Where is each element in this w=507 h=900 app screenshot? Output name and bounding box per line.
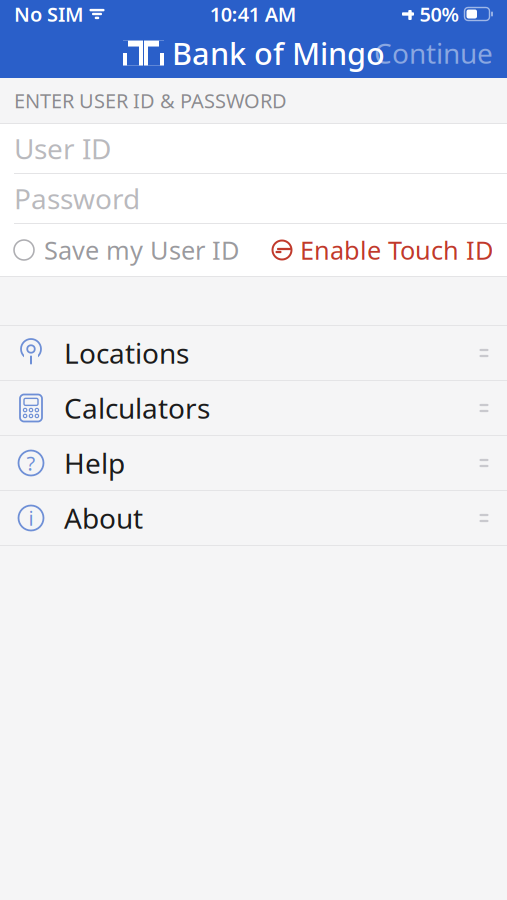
staticText: i xyxy=(28,505,33,531)
staticText: 50% xyxy=(419,1,459,27)
staticText: Enable Touch ID xyxy=(300,233,493,267)
staticText: Save my User ID xyxy=(44,233,239,267)
button[interactable]: Password xyxy=(0,174,507,224)
button[interactable]: Calculators xyxy=(0,381,507,436)
staticText: About xyxy=(64,499,143,537)
staticText: User ID xyxy=(14,130,111,167)
staticText: Bank of Mingo xyxy=(172,33,385,73)
button[interactable]: Save my User ID xyxy=(0,220,239,280)
staticText: Help xyxy=(64,444,125,482)
button[interactable]: i xyxy=(0,491,507,546)
button[interactable]: Locations xyxy=(0,326,507,381)
button[interactable]: User ID xyxy=(0,124,507,174)
button[interactable]: ? xyxy=(0,436,507,491)
staticText: 10:41 AM xyxy=(210,1,297,27)
staticText: Continue xyxy=(374,34,493,72)
staticText: ? xyxy=(26,450,35,476)
staticText: Calculators xyxy=(64,389,210,427)
staticText: ENTER USER ID & PASSWORD xyxy=(14,87,287,114)
staticText: No SIM xyxy=(14,1,84,27)
button[interactable]: Continue xyxy=(360,24,507,82)
staticText: Password xyxy=(14,180,140,217)
staticText: Locations xyxy=(64,334,189,372)
button[interactable]: Enable Touch ID xyxy=(271,220,507,280)
